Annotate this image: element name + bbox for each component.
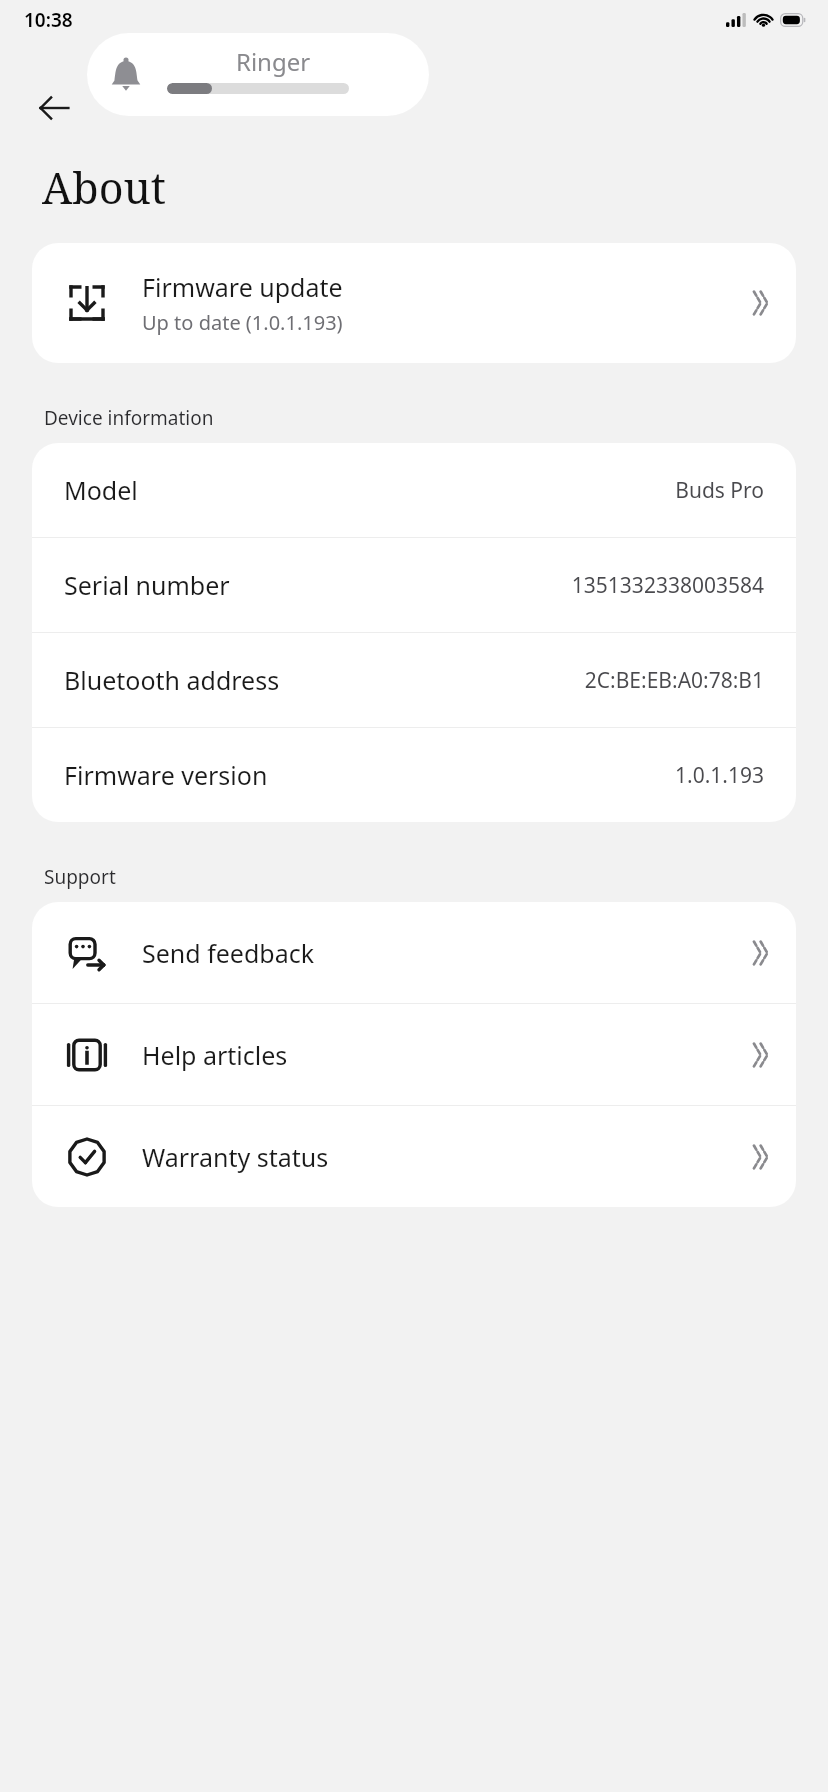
staticText: Device information (44, 405, 214, 431)
staticText: Send feedback (142, 936, 724, 970)
staticText: Bluetooth address (64, 663, 280, 697)
button[interactable]: Ringer volume (87, 33, 429, 116)
staticText: Up to date (1.0.1.193) (142, 309, 343, 336)
staticText: Firmware update (142, 270, 343, 304)
button[interactable]: Help articles (32, 1004, 796, 1105)
staticText: Ringer (236, 45, 311, 78)
button[interactable]: Bluetooth address (32, 633, 796, 727)
button[interactable]: Firmware version (32, 728, 796, 822)
staticText: 1351332338003584 (571, 571, 764, 600)
staticText: Warranty status (142, 1140, 724, 1174)
staticText: Model (64, 473, 138, 507)
staticText: 1.0.1.193 (675, 761, 764, 790)
staticText: Firmware version (64, 758, 268, 792)
staticText: 2C:BE:EB:A0:78:B1 (584, 666, 764, 695)
button[interactable]: Serial number (32, 538, 796, 632)
staticText: Serial number (64, 568, 230, 602)
button[interactable]: Warranty status (32, 1106, 796, 1207)
button[interactable]: Send feedback (32, 902, 796, 1003)
button[interactable]: Back (26, 80, 82, 136)
button[interactable]: Model (32, 443, 796, 537)
staticText: Support (44, 864, 116, 890)
staticText: About (42, 158, 166, 217)
staticText: Buds Pro (675, 476, 764, 505)
staticText: Help articles (142, 1038, 724, 1072)
staticText: 10:38 (24, 7, 73, 33)
button[interactable]: Firmware update (32, 243, 796, 363)
